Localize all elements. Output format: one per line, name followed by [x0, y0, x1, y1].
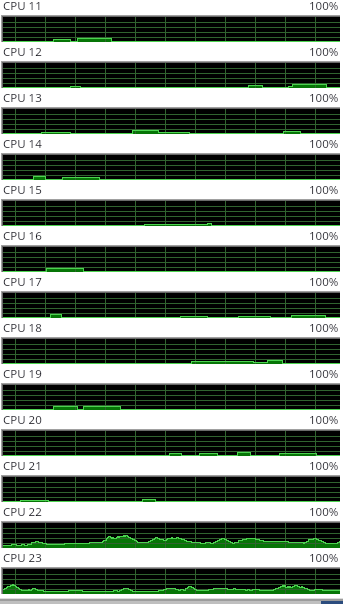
button[interactable]: CPU usage graphs [0, 0, 343, 604]
